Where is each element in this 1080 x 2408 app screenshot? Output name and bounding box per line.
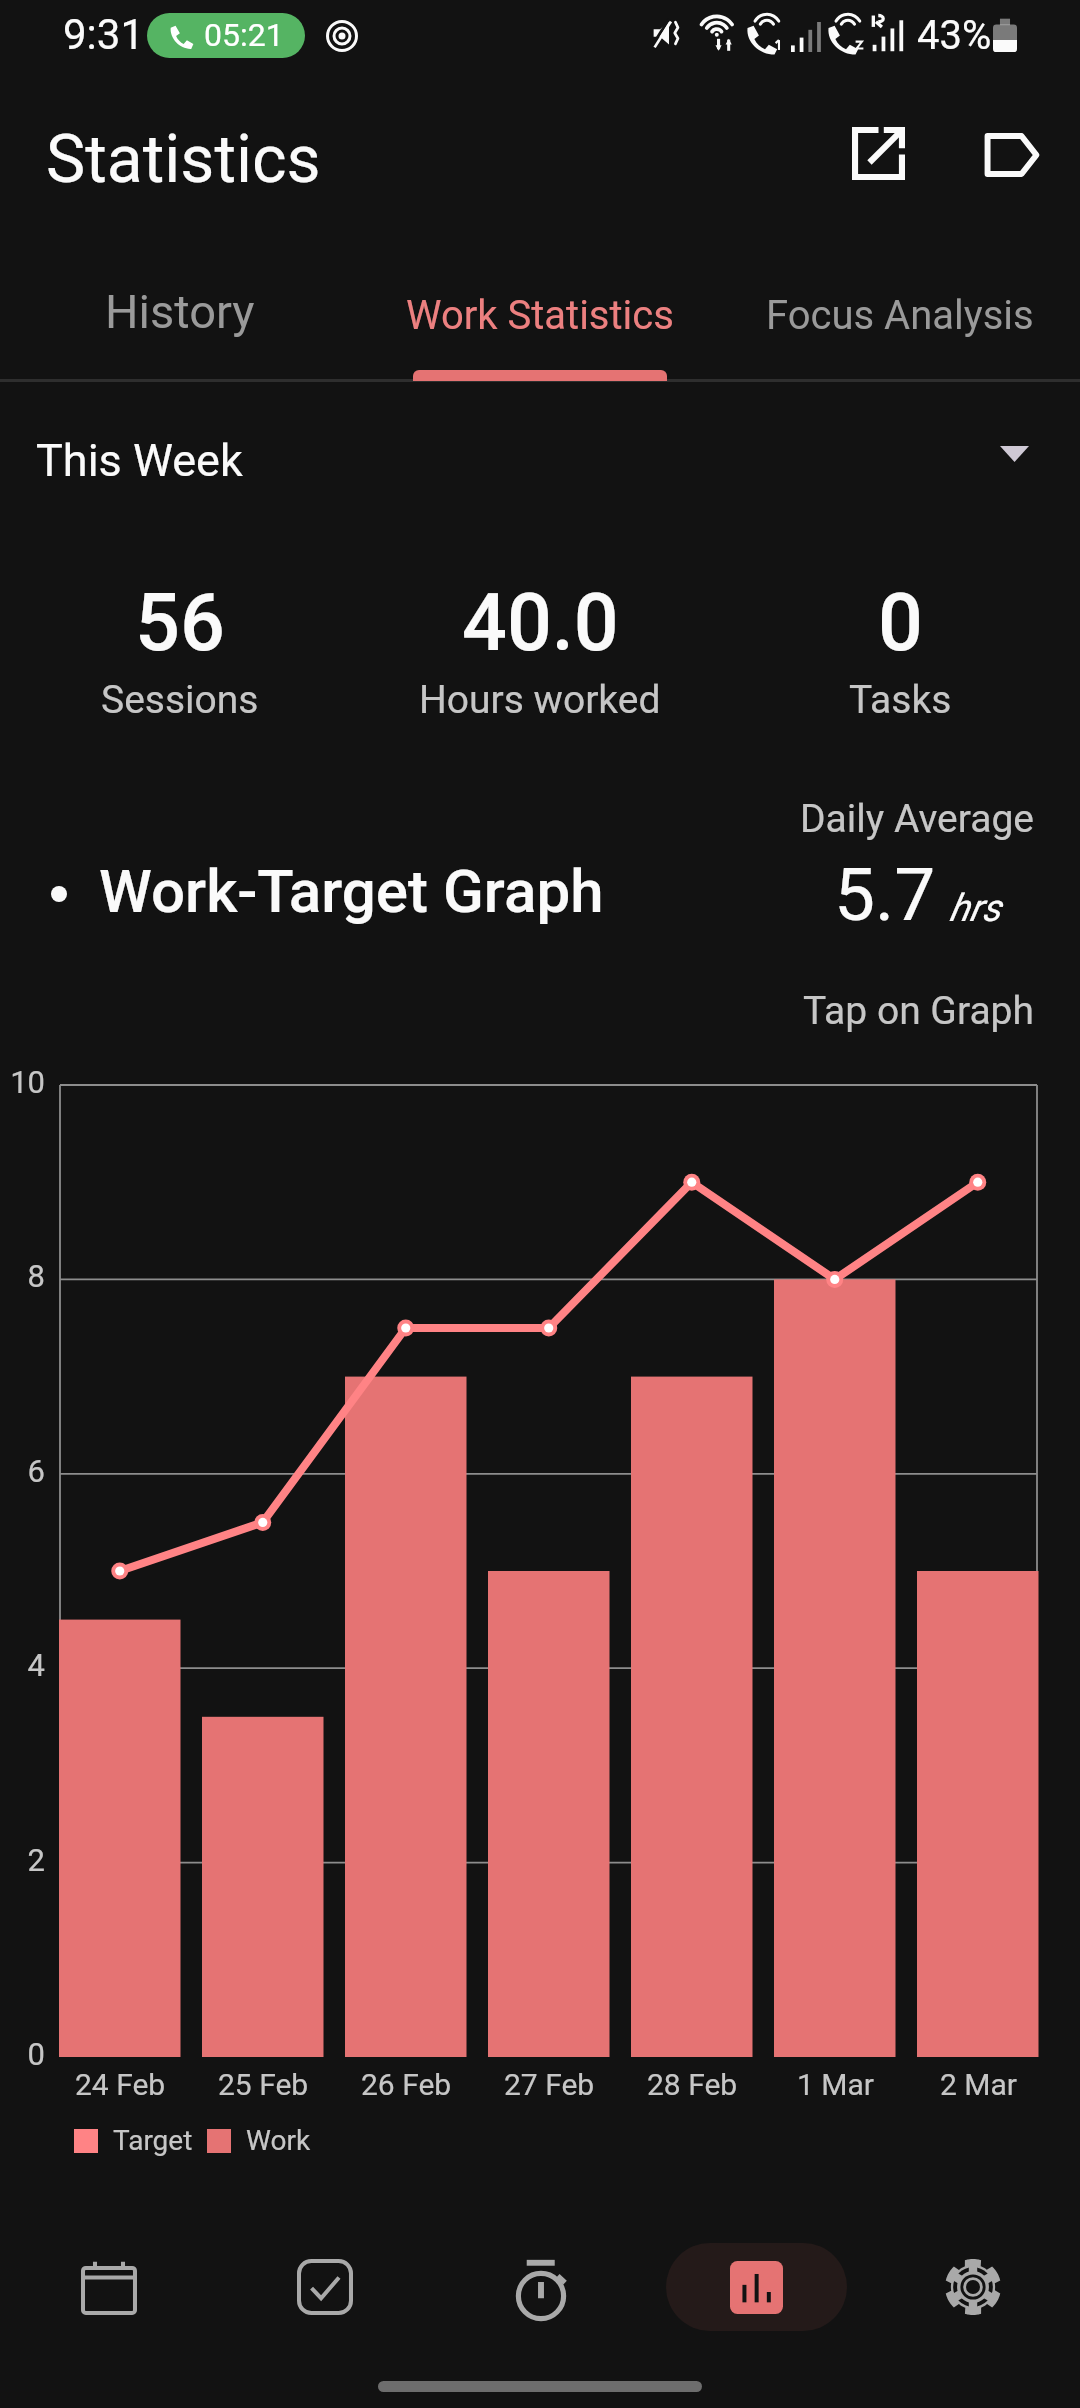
button[interactable]: Work-Target bar chart xyxy=(0,0,1080,2408)
staticText: 27 Feb xyxy=(504,2067,595,2102)
staticText: 6 xyxy=(0,1453,45,1489)
button[interactable]: Work Statistics xyxy=(360,235,720,382)
staticText: 10 xyxy=(0,1064,45,1100)
button[interactable]: Export statistics xyxy=(830,110,926,206)
staticText: This Week xyxy=(36,434,243,487)
staticText: 25 Feb xyxy=(218,2067,309,2102)
staticText: Statistics xyxy=(46,121,321,198)
staticText: Hours worked xyxy=(419,677,661,723)
button[interactable]: Statistics xyxy=(666,2243,847,2331)
staticText: 0 xyxy=(878,577,923,670)
staticText: History xyxy=(105,284,255,339)
button[interactable]: Timer xyxy=(450,2243,631,2331)
staticText: Tap on Graph xyxy=(803,988,1034,1034)
staticText: 24 Feb xyxy=(75,2067,166,2102)
staticText: 5.7 xyxy=(834,852,936,938)
staticText: Target xyxy=(113,2124,193,2157)
staticText: 43% xyxy=(917,12,992,59)
staticText: 1 Mar xyxy=(797,2067,874,2102)
button[interactable]: Focus Analysis xyxy=(720,235,1080,382)
staticText: 2 Mar xyxy=(940,2067,1017,2102)
staticText: 2 xyxy=(0,1842,45,1878)
staticText: Work xyxy=(246,2124,311,2157)
staticText: Tasks xyxy=(849,677,952,723)
button[interactable]: History xyxy=(0,235,360,382)
staticText: hrs xyxy=(949,886,1001,931)
button[interactable]: This Week xyxy=(0,424,1080,496)
staticText: Daily Average xyxy=(800,796,1034,842)
staticText: 05:21 xyxy=(204,16,284,54)
button[interactable]: Calendar xyxy=(18,2243,199,2331)
staticText: 56 xyxy=(135,577,225,670)
staticText: 26 Feb xyxy=(361,2067,452,2102)
staticText: 0 xyxy=(0,2036,45,2072)
staticText: 4 xyxy=(0,1647,45,1683)
staticText: Focus Analysis xyxy=(766,292,1034,339)
staticText: Work Statistics xyxy=(406,292,674,339)
staticText: Work-Target Graph xyxy=(99,856,604,926)
button[interactable]: Tasks xyxy=(234,2243,415,2331)
staticText: Sessions xyxy=(101,677,259,723)
staticText: 9:31 xyxy=(63,10,144,59)
button[interactable]: Labels xyxy=(966,110,1062,206)
staticText: 28 Feb xyxy=(647,2067,738,2102)
button[interactable]: Settings xyxy=(882,2243,1063,2331)
staticText: 40.0 xyxy=(462,577,619,670)
staticText: 8 xyxy=(0,1258,45,1294)
